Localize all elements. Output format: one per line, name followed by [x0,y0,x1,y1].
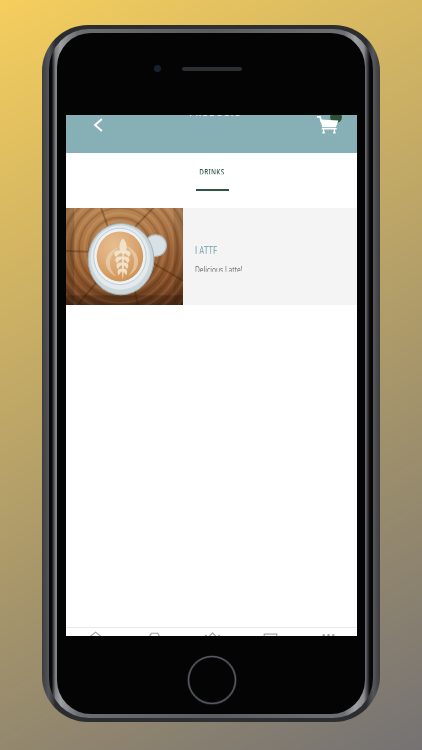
staticText: LATTE [195,241,218,254]
staticText: DRINKS [199,165,225,174]
button[interactable]: Menu [125,631,183,636]
button[interactable]: DRINKS [190,153,234,191]
button[interactable]: More [299,631,357,636]
button[interactable]: Back [85,115,111,138]
other: Home button [184,652,240,708]
button[interactable]: Home [66,631,125,636]
button[interactable]: Order [183,631,241,636]
button[interactable]: Shopping cart [313,115,341,138]
staticText: Delicious Latte! [195,263,243,272]
staticText: PRODUCTS [189,115,242,118]
button[interactable]: LATTE [66,208,357,305]
button[interactable]: Rewards [241,631,299,636]
